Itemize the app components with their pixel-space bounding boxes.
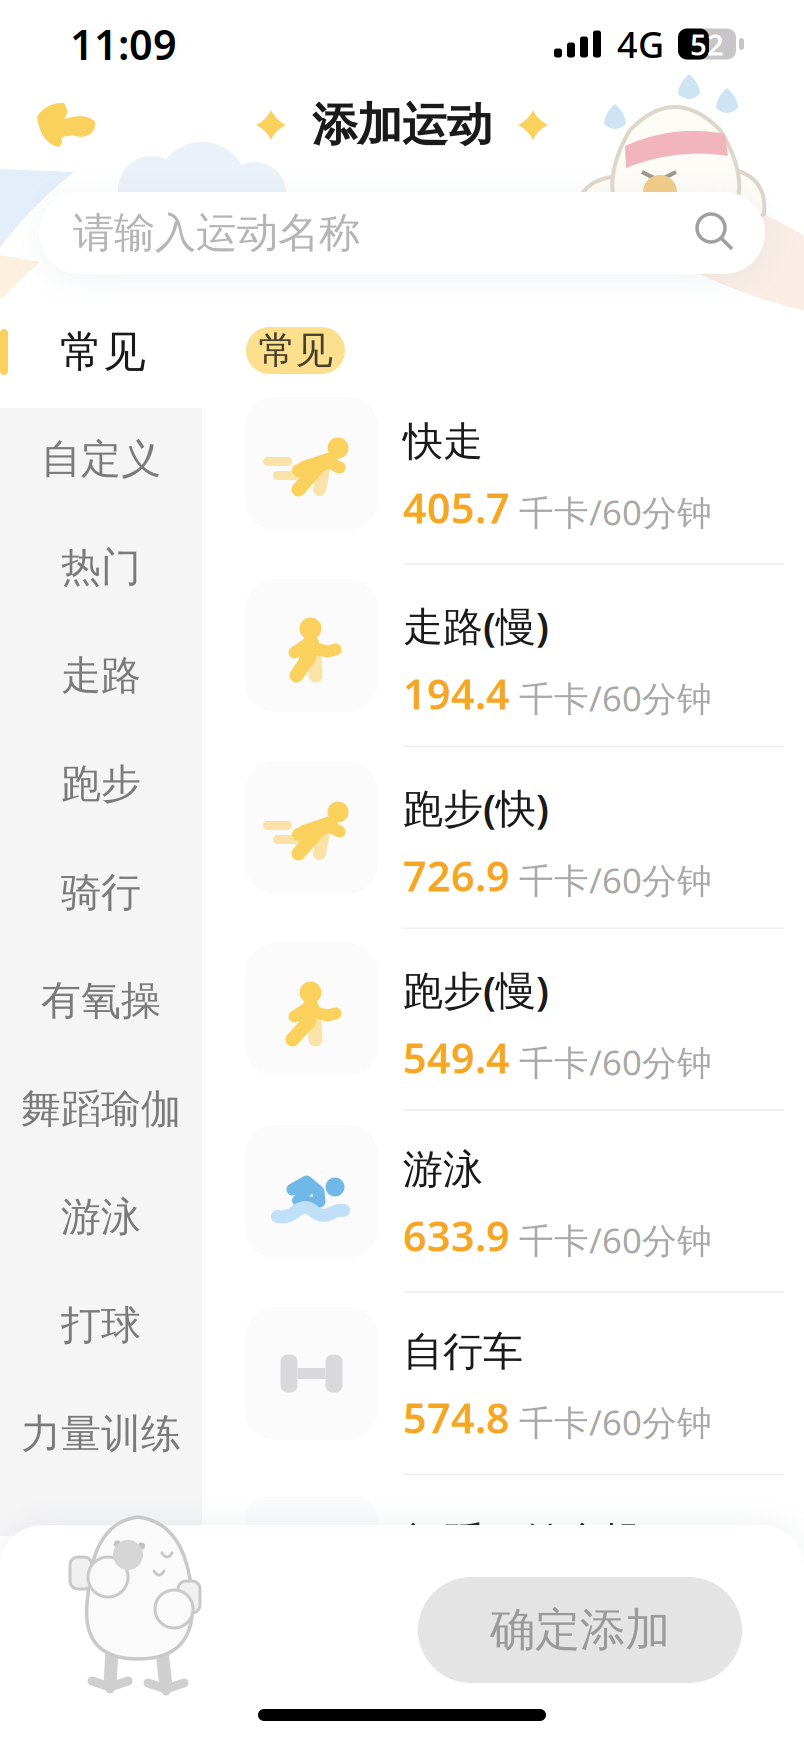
button[interactable]: 热门 xyxy=(0,513,202,622)
button[interactable]: 常见 xyxy=(246,327,345,374)
button[interactable]: 走路 xyxy=(0,622,202,730)
staticText: 194.4 xyxy=(403,666,510,721)
button[interactable]: 自定义 xyxy=(0,405,202,513)
button[interactable]: 确定添加 xyxy=(418,1577,742,1683)
staticText: 574.8 xyxy=(403,1390,510,1445)
button[interactable]: 有氧操 xyxy=(0,946,202,1055)
staticText: 549.4 xyxy=(403,1030,510,1085)
staticText: 力量训练 xyxy=(21,1409,181,1458)
staticText: 舞蹈、健身操 xyxy=(403,1517,643,1566)
button[interactable]: 游泳 xyxy=(0,1163,202,1271)
button[interactable]: 请输入运动名称 xyxy=(39,192,765,274)
button[interactable]: 游泳 xyxy=(202,1111,804,1293)
button[interactable]: 跑步(慢) xyxy=(202,929,804,1111)
staticText: 常见 xyxy=(60,326,146,378)
staticText: 常见 xyxy=(258,328,332,373)
staticText: 跑步(快) xyxy=(403,781,549,834)
staticText: 千卡/60分钟 xyxy=(519,1217,712,1263)
button[interactable]: 舞蹈瑜伽 xyxy=(0,1055,202,1163)
button[interactable]: 跑步(快) xyxy=(202,747,804,929)
staticText: 走路 xyxy=(61,651,141,700)
staticText: 千卡/60分钟 xyxy=(519,675,712,721)
staticText: 添加运动 xyxy=(312,97,492,153)
staticText: 骑行 xyxy=(61,868,141,917)
button[interactable]: 快走 xyxy=(202,383,804,565)
staticText: 千卡/60分钟 xyxy=(519,1399,712,1445)
staticText: 52 xyxy=(690,24,724,63)
staticText: 舞蹈瑜伽 xyxy=(21,1084,181,1133)
staticText: 633.9 xyxy=(403,1208,510,1263)
button[interactable]: 打球 xyxy=(0,1271,202,1380)
button[interactable]: 跑步 xyxy=(0,730,202,838)
staticText: 跑步 xyxy=(61,759,141,809)
button[interactable]: 走路(慢) xyxy=(202,565,804,747)
staticText: 自行车 xyxy=(403,1327,523,1376)
staticText: 有氧操 xyxy=(41,976,161,1025)
staticText: 确定添加 xyxy=(490,1602,670,1658)
staticText: 热门 xyxy=(61,543,141,592)
staticText: 游泳 xyxy=(61,1193,141,1242)
staticText: 726.9 xyxy=(403,848,510,903)
button[interactable]: 自行车 xyxy=(202,1293,804,1475)
button[interactable]: Back xyxy=(20,90,112,160)
button[interactable]: 骑行 xyxy=(0,838,202,946)
staticText: 快走 xyxy=(403,417,483,466)
staticText: 跑步(慢) xyxy=(403,963,549,1016)
staticText: 千卡/60分钟 xyxy=(519,857,712,903)
staticText: 11:09 xyxy=(70,17,177,71)
staticText: 游泳 xyxy=(403,1145,483,1194)
staticText: 千卡/60分钟 xyxy=(519,489,712,535)
staticText: 千卡/60分钟 xyxy=(519,1039,712,1085)
staticText: 4G xyxy=(617,20,664,68)
staticText: 自定义 xyxy=(41,435,161,484)
staticText: 打球 xyxy=(61,1301,141,1350)
staticText: 走路(慢) xyxy=(403,599,549,652)
staticText: 请输入运动名称 xyxy=(73,208,360,258)
staticText: 405.7 xyxy=(403,480,510,535)
button[interactable]: 力量训练 xyxy=(0,1380,202,1488)
